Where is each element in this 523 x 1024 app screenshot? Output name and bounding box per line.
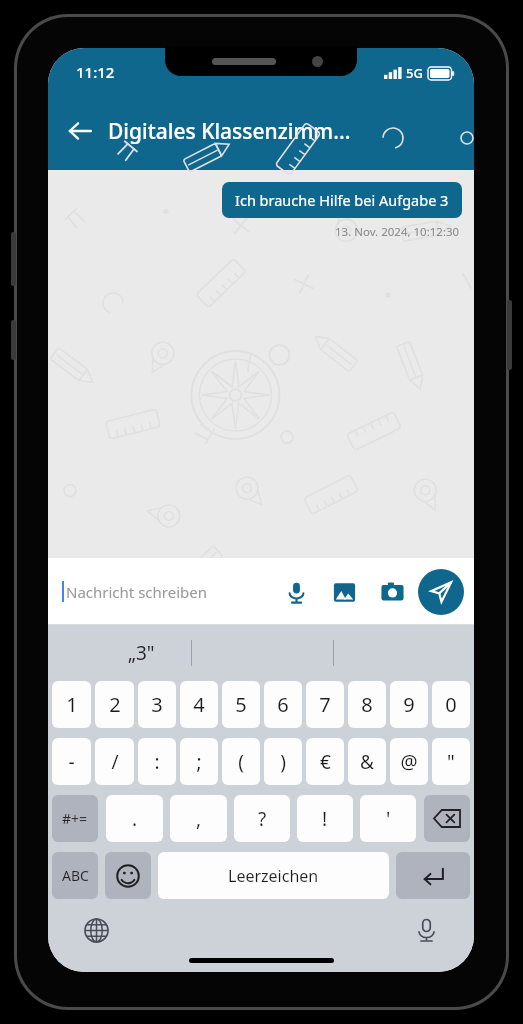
staticText: € <box>320 749 331 775</box>
button[interactable]: 7 <box>306 681 344 728</box>
staticText: 5G <box>406 64 423 82</box>
staticText: ( <box>238 749 244 775</box>
staticText: ABC <box>62 866 89 885</box>
button[interactable]: ) <box>264 738 302 785</box>
staticText: 8 <box>361 691 373 718</box>
button[interactable]: Ich brauche Hilfe bei Aufgabe 3 <box>222 182 462 218</box>
staticText: 6 <box>277 691 289 718</box>
button[interactable]: 0 <box>432 681 470 728</box>
button[interactable]: Foto aufnehmen <box>372 572 412 612</box>
button[interactable]: € <box>306 738 344 785</box>
staticText: ) <box>280 749 286 775</box>
staticText: „3" <box>128 640 155 666</box>
button[interactable]: & <box>348 738 386 785</box>
button[interactable]: 6 <box>264 681 302 728</box>
button[interactable]: 5 <box>222 681 260 728</box>
button[interactable]: 2 <box>95 681 134 728</box>
button[interactable]: Diktieren <box>406 910 446 950</box>
button[interactable]: 1 <box>52 681 91 728</box>
button[interactable]: , <box>170 795 227 842</box>
staticText: ? <box>258 806 267 832</box>
button[interactable]: ABC <box>52 852 98 899</box>
staticText: Ich brauche Hilfe bei Aufgabe 3 <box>235 190 449 210</box>
staticText: , <box>196 806 202 832</box>
button[interactable]: ? <box>234 795 290 842</box>
button[interactable]: ( <box>222 738 260 785</box>
staticText: " <box>447 749 455 775</box>
button[interactable]: ; <box>180 738 218 785</box>
button[interactable]: Emoji <box>105 852 151 899</box>
button[interactable]: Eingabe <box>396 852 470 899</box>
staticText: 5 <box>235 691 247 718</box>
button[interactable]: - <box>52 738 91 785</box>
button[interactable]: Löschen <box>424 795 470 842</box>
staticText: Digitales Klassenzimm... <box>108 117 351 146</box>
staticText: 11:12 <box>76 62 115 82</box>
staticText: @ <box>400 749 418 775</box>
button[interactable]: #+= <box>52 795 98 842</box>
staticText: ; <box>196 749 202 775</box>
staticText: ! <box>322 806 328 832</box>
button[interactable]: 9 <box>390 681 428 728</box>
staticText: 2 <box>109 691 121 718</box>
button[interactable]: / <box>95 738 134 785</box>
button[interactable]: : <box>138 738 176 785</box>
staticText: - <box>68 749 75 775</box>
staticText: 9 <box>403 691 415 718</box>
staticText: 0 <box>445 691 457 718</box>
staticText: ' <box>386 806 391 832</box>
button[interactable]: ' <box>360 795 416 842</box>
button[interactable]: 8 <box>348 681 386 728</box>
button[interactable]: Spracheingabe <box>276 572 316 612</box>
button[interactable]: " <box>432 738 470 785</box>
staticText: 4 <box>193 691 205 718</box>
button[interactable]: Zurück <box>56 107 104 155</box>
staticText: 7 <box>319 691 331 718</box>
button[interactable]: ! <box>297 795 353 842</box>
staticText: #+= <box>62 809 88 828</box>
button[interactable]: . <box>106 795 163 842</box>
staticText: Leerzeichen <box>228 865 319 887</box>
button[interactable]: @ <box>390 738 428 785</box>
staticText: : <box>154 749 160 775</box>
button[interactable]: 4 <box>180 681 218 728</box>
button[interactable]: Sprache wechseln <box>76 910 116 950</box>
button[interactable]: Senden <box>418 569 464 615</box>
staticText: Nachricht schreiben <box>66 582 207 602</box>
staticText: 1 <box>66 691 78 718</box>
button[interactable]: Bild senden <box>324 572 364 612</box>
staticText: / <box>111 749 119 775</box>
staticText: . <box>132 806 138 832</box>
staticText: 3 <box>151 691 163 718</box>
button[interactable]: 3 <box>138 681 176 728</box>
button[interactable]: Nachricht schreiben <box>62 558 276 625</box>
button[interactable]: Leerzeichen <box>158 852 389 899</box>
staticText: 13. Nov. 2024, 10:12:30 <box>335 224 460 240</box>
staticText: & <box>360 749 374 775</box>
